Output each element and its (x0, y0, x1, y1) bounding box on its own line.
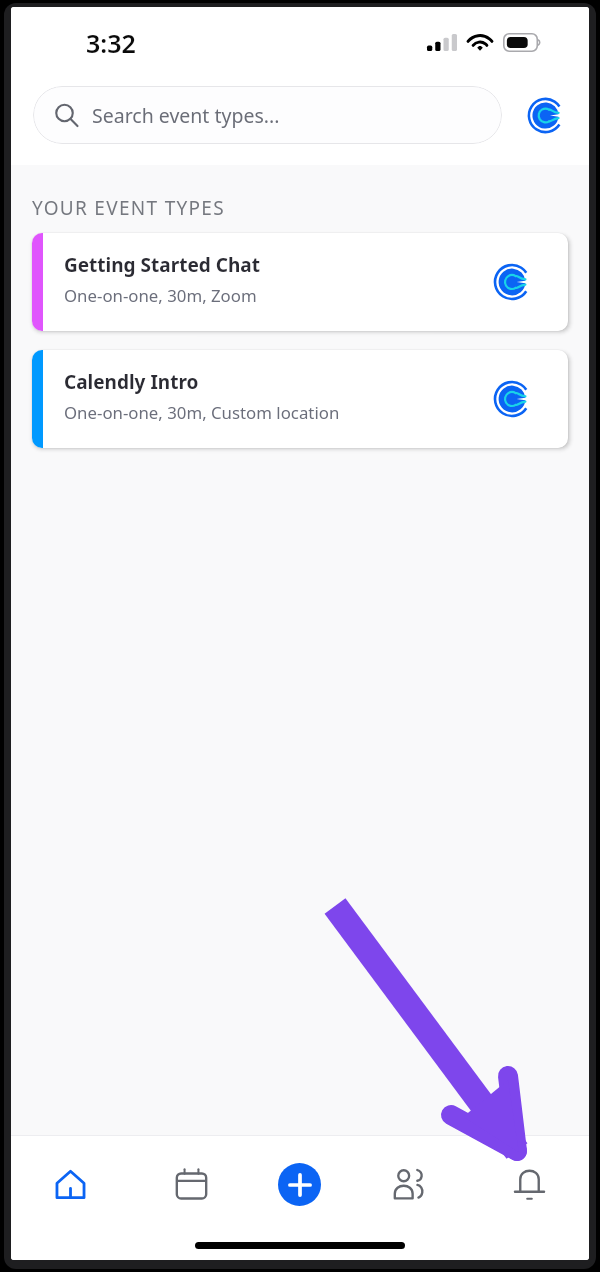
staticText: One-on-one, 30m, Custom location (64, 401, 340, 424)
button[interactable]: Calendly Intro (32, 350, 568, 448)
button[interactable]: Home (11, 1136, 126, 1233)
staticText: Search event types... (92, 102, 280, 129)
staticText: Calendly Intro (64, 369, 199, 395)
button[interactable]: Search event types... (33, 86, 502, 144)
button[interactable]: Notifications (473, 1136, 589, 1233)
staticText: 3:32 (86, 26, 136, 60)
staticText: One-on-one, 30m, Zoom (64, 284, 257, 307)
button[interactable]: Getting Started Chat (32, 233, 568, 331)
button[interactable]: Contacts (357, 1136, 473, 1233)
staticText: YOUR EVENT TYPES (32, 195, 225, 221)
button[interactable]: Account (520, 90, 570, 140)
button[interactable]: Create new event (278, 1163, 321, 1206)
staticText: Getting Started Chat (64, 252, 260, 278)
button[interactable]: Calendar (126, 1136, 241, 1233)
